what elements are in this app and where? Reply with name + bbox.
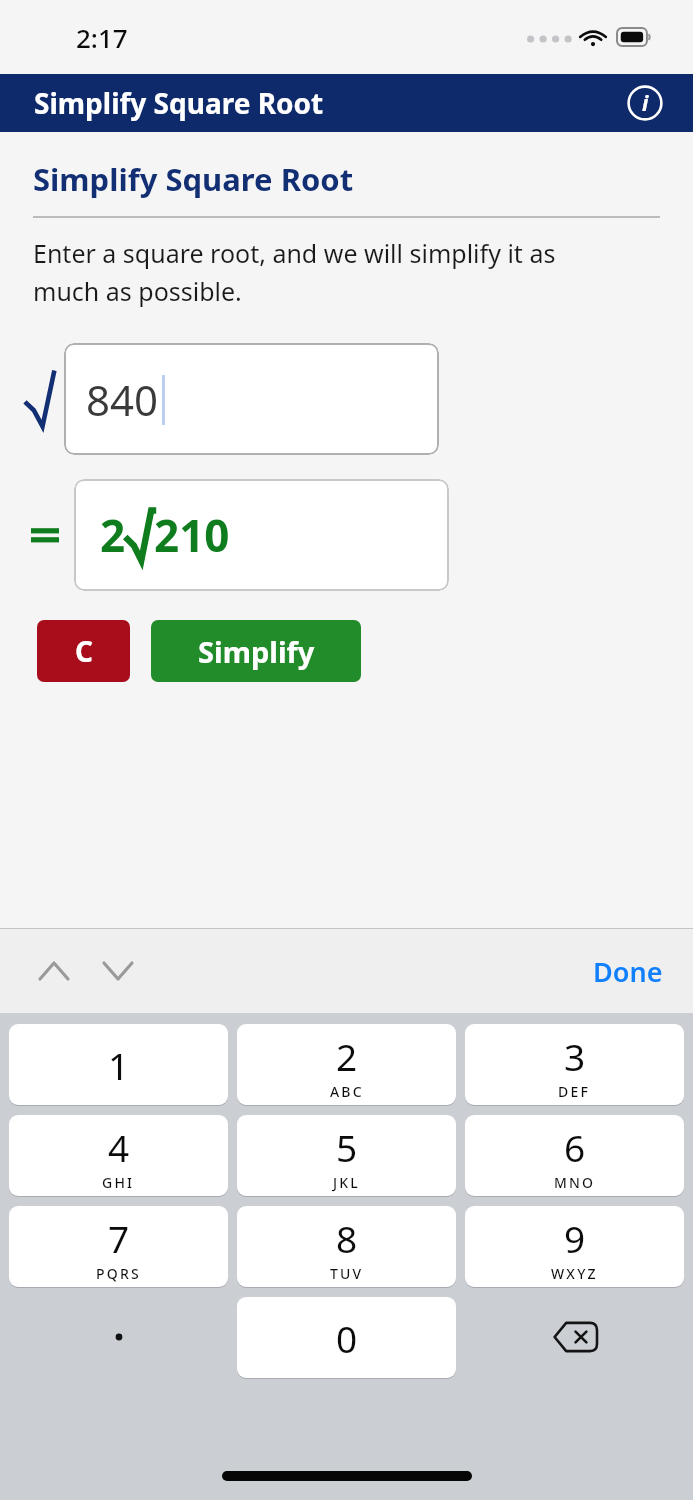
button[interactable]: 4 [9,1113,228,1197]
staticText: WXYZ [551,1264,598,1283]
staticText: 7 [108,1213,130,1263]
staticText: ABC [330,1082,364,1101]
button[interactable]: Info [623,81,667,125]
button[interactable]: 7 [9,1204,228,1288]
button[interactable]: C [37,620,130,682]
button[interactable]: 9 [465,1204,684,1288]
staticText: Simplify [198,632,315,671]
button[interactable]: 1 [9,1022,228,1106]
button[interactable]: 2 [237,1022,456,1106]
staticText: 6 [564,1122,586,1172]
staticText: MNO [554,1173,596,1192]
button[interactable]: 0 [237,1295,456,1379]
button[interactable]: Simplify [151,620,361,682]
staticText: Done [593,953,663,990]
staticText: JKL [333,1173,360,1192]
staticText: 210 [154,505,230,565]
staticText: Enter a square root, and we will simplif… [33,236,556,270]
staticText: i [642,89,649,118]
staticText: 9 [564,1213,586,1263]
button[interactable]: Next field [96,949,140,993]
staticText: DEF [558,1082,591,1101]
staticText: TUV [330,1264,364,1283]
button[interactable]: Backspace [465,1291,684,1382]
button[interactable]: 5 [237,1113,456,1197]
staticText: 2:17 [76,20,128,55]
staticText: much as possible. [33,274,242,308]
button[interactable]: 3 [465,1022,684,1106]
staticText: GHI [102,1173,135,1192]
staticText: PQRS [96,1264,141,1283]
button[interactable]: Done [585,945,671,998]
staticText: 4 [108,1122,130,1172]
button[interactable] [9,1291,228,1382]
staticText: C [75,632,93,670]
button[interactable]: Previous field [32,949,76,993]
staticText: 1 [108,1040,130,1090]
staticText: 8 [336,1213,358,1263]
staticText: 3 [564,1031,586,1081]
button[interactable]: 8 [237,1204,456,1288]
button[interactable]: 840 [64,343,439,455]
staticText: 840 [86,371,159,428]
staticText: 5 [336,1122,358,1172]
staticText: 2 [100,505,126,565]
staticText: 2 [336,1031,358,1081]
staticText: Simplify Square Root [33,158,354,200]
staticText: Simplify Square Root [34,84,324,122]
staticText: 0 [336,1313,358,1363]
button[interactable]: 6 [465,1113,684,1197]
